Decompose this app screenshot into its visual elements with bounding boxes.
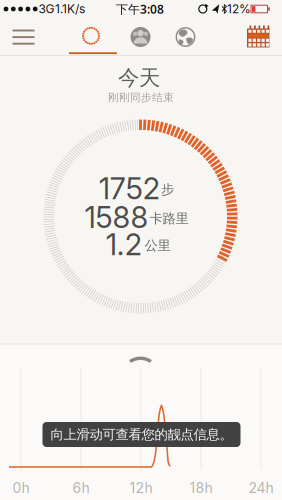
staticText: 刚刚同步结束	[108, 91, 174, 104]
staticText: 0h	[12, 479, 29, 496]
staticText: 向上滑动可查看您的靓点信息。	[50, 426, 232, 443]
staticText: 下午3:08	[116, 1, 164, 17]
staticText: 1752	[99, 171, 160, 206]
button[interactable]: Menu	[12, 28, 34, 44]
staticText: 今天	[118, 65, 160, 91]
staticText: 24h	[248, 479, 273, 496]
staticText: 3G	[38, 2, 54, 16]
staticText: 步	[161, 181, 174, 198]
staticText: 12%	[227, 2, 251, 16]
staticText: 18h	[189, 479, 212, 496]
button[interactable]: Calendar	[247, 25, 269, 47]
button[interactable]: Activity	[67, 20, 115, 56]
staticText: 公里	[144, 237, 170, 254]
staticText: 6h	[72, 479, 89, 496]
button[interactable]: Expand details	[128, 353, 152, 365]
staticText: 1.2	[106, 227, 142, 262]
staticText: 1588	[84, 200, 148, 235]
staticText: 1.1K/s	[55, 2, 85, 16]
button[interactable]: Explore	[175, 27, 195, 47]
button[interactable]: Friends	[129, 26, 151, 48]
staticText: 12h	[129, 479, 152, 496]
staticText: 卡路里	[149, 210, 188, 227]
